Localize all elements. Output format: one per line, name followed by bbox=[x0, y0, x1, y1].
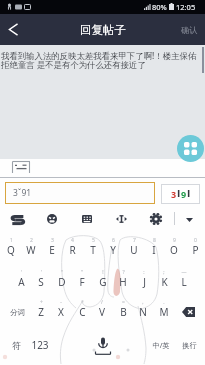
staticText: ’ bbox=[41, 269, 42, 276]
button[interactable]: D bbox=[52, 272, 72, 292]
staticText: ‘ bbox=[21, 269, 22, 276]
staticText: A bbox=[18, 275, 25, 289]
button[interactable]: Advertisement bbox=[161, 184, 200, 204]
staticText: = bbox=[122, 299, 125, 306]
staticText: 符 bbox=[12, 340, 21, 351]
button[interactable]: K bbox=[154, 272, 174, 292]
staticText: 9 bbox=[173, 237, 176, 244]
button[interactable]: S bbox=[31, 272, 51, 292]
button[interactable]: W bbox=[21, 240, 41, 260]
staticText: K bbox=[161, 275, 168, 289]
staticText: 回复帖子 bbox=[80, 23, 126, 37]
staticText: 123 bbox=[31, 338, 49, 352]
button[interactable]: Z bbox=[31, 302, 51, 322]
button[interactable]: P bbox=[185, 240, 205, 260]
staticText: Y bbox=[110, 243, 116, 257]
staticText: Q bbox=[7, 243, 15, 257]
button[interactable]: Backspace bbox=[176, 302, 200, 322]
button[interactable]: J bbox=[134, 272, 154, 292]
staticText: 1 bbox=[10, 237, 13, 244]
staticText: 3 bbox=[51, 237, 54, 244]
button[interactable]: R bbox=[62, 240, 82, 260]
staticText: X bbox=[58, 305, 64, 319]
button[interactable]: Back bbox=[0, 14, 30, 45]
staticText: I bbox=[152, 243, 156, 257]
staticText: O bbox=[170, 243, 178, 257]
staticText: 4 bbox=[71, 237, 74, 244]
staticText: 80% bbox=[152, 2, 167, 12]
button[interactable]: 中/英 bbox=[147, 335, 175, 355]
button[interactable]: H bbox=[113, 272, 133, 292]
button[interactable] bbox=[12, 161, 30, 173]
staticText: + bbox=[40, 299, 43, 306]
button[interactable]: M bbox=[154, 302, 174, 322]
staticText: 我看到输入法的反映太差我看来甲下了啊!！楼主保佑 bbox=[1, 50, 197, 61]
button[interactable]: V bbox=[92, 302, 112, 322]
staticText: 拒绝童言 是不是有个为什么还有接近了 bbox=[1, 59, 146, 70]
button[interactable]: Move cursor bbox=[113, 212, 130, 226]
button[interactable]: E bbox=[42, 240, 62, 260]
staticText: ! bbox=[102, 269, 104, 276]
staticText: M bbox=[159, 305, 169, 319]
staticText: G bbox=[99, 275, 107, 289]
staticText: : bbox=[143, 269, 145, 276]
staticText: 7 bbox=[133, 237, 136, 244]
button[interactable]: F bbox=[72, 272, 92, 292]
button[interactable]: C bbox=[72, 302, 92, 322]
button[interactable]: Sogou input bbox=[8, 211, 27, 229]
button[interactable]: B bbox=[113, 302, 133, 322]
button[interactable]: N bbox=[133, 302, 153, 322]
button[interactable]: I bbox=[144, 240, 164, 260]
staticText: B bbox=[120, 305, 127, 319]
staticText: 中/英 bbox=[152, 340, 170, 350]
staticText: . bbox=[163, 299, 165, 306]
button[interactable]: More options bbox=[177, 135, 204, 162]
button[interactable]: G bbox=[93, 272, 113, 292]
button[interactable]: 分词 bbox=[3, 302, 31, 322]
button[interactable]: Q bbox=[1, 240, 21, 260]
button[interactable]: Y bbox=[103, 240, 123, 260]
staticText: ” bbox=[81, 269, 83, 276]
staticText: Ⅰ bbox=[177, 189, 181, 199]
staticText: , bbox=[142, 299, 144, 306]
button[interactable]: L bbox=[174, 272, 194, 292]
staticText: / bbox=[101, 299, 103, 306]
button[interactable]: Collapse keyboard bbox=[182, 212, 197, 227]
button[interactable]: 符 bbox=[2, 335, 30, 355]
staticText: - bbox=[60, 299, 62, 306]
button[interactable]: 换行 bbox=[175, 335, 203, 355]
button[interactable]: A bbox=[11, 272, 31, 292]
staticText: R bbox=[69, 243, 76, 257]
staticText: J bbox=[143, 275, 146, 289]
button[interactable]: Keyboard layout bbox=[79, 212, 95, 226]
staticText: Ⅰ bbox=[187, 189, 191, 199]
button[interactable]: Emoji bbox=[44, 211, 60, 227]
staticText: S bbox=[38, 275, 44, 289]
staticText: 换行 bbox=[182, 341, 197, 350]
staticText: Z bbox=[38, 305, 44, 319]
button[interactable]: U bbox=[124, 240, 144, 260]
button[interactable]: Space and voice input bbox=[88, 333, 118, 359]
button[interactable]: 123 bbox=[30, 335, 50, 355]
staticText: W bbox=[26, 243, 36, 257]
button[interactable]: O bbox=[164, 240, 184, 260]
button[interactable]: 确认 bbox=[175, 14, 203, 45]
staticText: E bbox=[49, 243, 55, 257]
staticText: L bbox=[181, 275, 187, 289]
staticText: 12:05 bbox=[176, 2, 196, 12]
staticText: “ bbox=[61, 269, 63, 276]
staticText: 3ˇ91 bbox=[13, 187, 32, 199]
staticText: 3 bbox=[171, 188, 177, 200]
staticText: 确认 bbox=[181, 25, 198, 35]
staticText: 分词 bbox=[10, 308, 25, 317]
staticText: D bbox=[58, 275, 66, 289]
staticText: T bbox=[90, 243, 96, 257]
button[interactable]: X bbox=[51, 302, 71, 322]
staticText: P bbox=[192, 243, 199, 257]
staticText: ; bbox=[163, 269, 165, 276]
staticText: * bbox=[81, 299, 84, 306]
staticText: 2 bbox=[30, 237, 33, 244]
button[interactable]: T bbox=[83, 240, 103, 260]
button[interactable]: 3ˇ91 bbox=[5, 182, 155, 204]
button[interactable]: Settings bbox=[148, 211, 164, 227]
